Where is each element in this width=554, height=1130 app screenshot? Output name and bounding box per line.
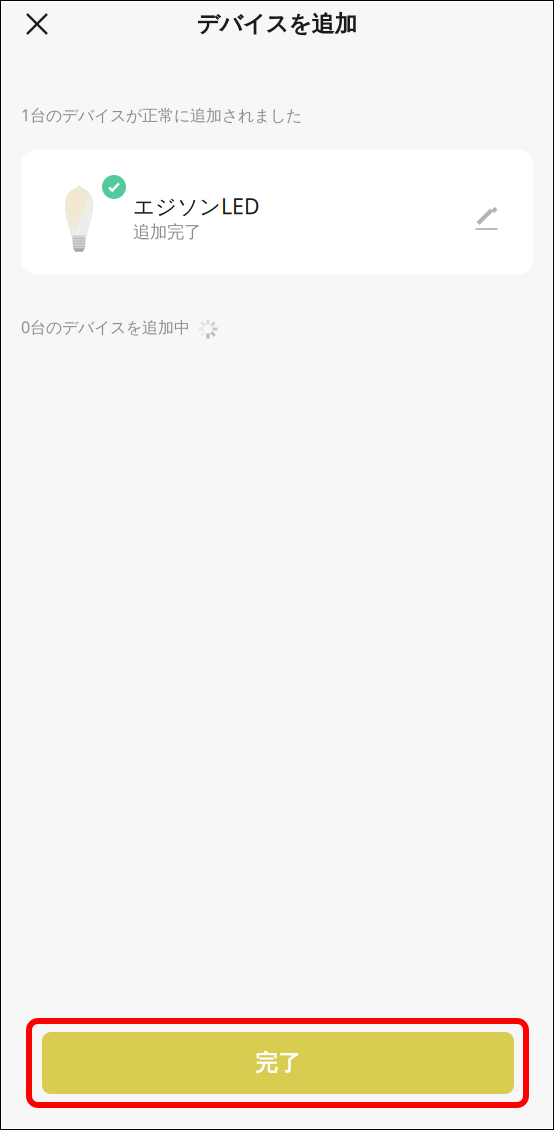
staticText: デバイスを追加 — [196, 10, 357, 38]
staticText: 完了 — [255, 1049, 301, 1077]
staticText: 追加完了 — [133, 221, 201, 243]
staticText: エジソンLED — [133, 192, 260, 220]
button[interactable]: 完了 — [42, 1032, 514, 1094]
button[interactable]: 閉じる — [15, 2, 59, 46]
button[interactable]: 名前を編集 — [466, 197, 510, 241]
staticText: 1台のデバイスが正常に追加されました — [21, 104, 302, 126]
staticText: 0台のデバイスを追加中 — [21, 316, 190, 338]
